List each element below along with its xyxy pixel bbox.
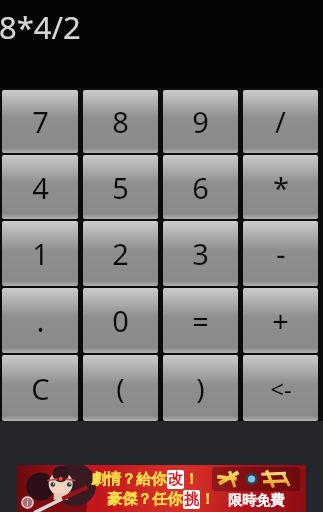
staticText: 6 (192, 168, 209, 207)
staticText: ( (116, 369, 125, 407)
button[interactable]: 7 (2, 90, 78, 153)
button[interactable]: <- (243, 355, 318, 421)
staticText: 0 (112, 301, 129, 340)
button[interactable]: - (243, 221, 318, 286)
button[interactable]: 8 (83, 90, 158, 153)
staticText: ) (196, 369, 205, 407)
staticText: 限時免費 (228, 492, 284, 510)
button[interactable]: ) (163, 355, 238, 421)
staticText: 8*4/2 (0, 6, 81, 48)
staticText: i (26, 497, 29, 508)
staticText: 9 (192, 102, 209, 141)
staticText: 3 (192, 234, 209, 273)
staticText: <- (270, 372, 292, 405)
staticText: 改 (168, 470, 183, 489)
button[interactable]: 4 (2, 155, 78, 219)
staticText: - (276, 234, 286, 273)
button[interactable]: Advertisement (17, 465, 306, 512)
button[interactable]: 3 (163, 221, 238, 286)
staticText: 7 (32, 102, 49, 141)
staticText: 劇情？給你 (91, 470, 166, 489)
button[interactable]: = (163, 288, 238, 353)
staticText: / (275, 102, 286, 141)
staticText: = (192, 301, 209, 340)
button[interactable]: 9 (163, 90, 238, 153)
staticText: . (36, 300, 45, 341)
button[interactable]: 1 (2, 221, 78, 286)
staticText: 4 (32, 168, 49, 207)
staticText: 豪傑？任你 (107, 490, 182, 509)
button[interactable]: . (2, 288, 78, 353)
staticText: + (272, 301, 289, 340)
staticText: 挑 (184, 490, 199, 509)
staticText: 2 (112, 234, 129, 273)
button[interactable]: C (2, 355, 78, 421)
staticText: C (31, 369, 50, 408)
staticText: 1 (32, 234, 49, 273)
staticText: 5 (112, 168, 129, 207)
staticText: * (273, 168, 289, 207)
button[interactable]: 5 (83, 155, 158, 219)
button[interactable]: 6 (163, 155, 238, 219)
button[interactable]: ( (83, 355, 158, 421)
button[interactable]: / (243, 90, 318, 153)
button[interactable]: 2 (83, 221, 158, 286)
button[interactable]: + (243, 288, 318, 353)
button[interactable]: * (243, 155, 318, 219)
staticText: 8 (112, 102, 129, 141)
staticText: ！ (200, 490, 215, 509)
button[interactable]: 0 (83, 288, 158, 353)
staticText: ！ (184, 470, 199, 489)
